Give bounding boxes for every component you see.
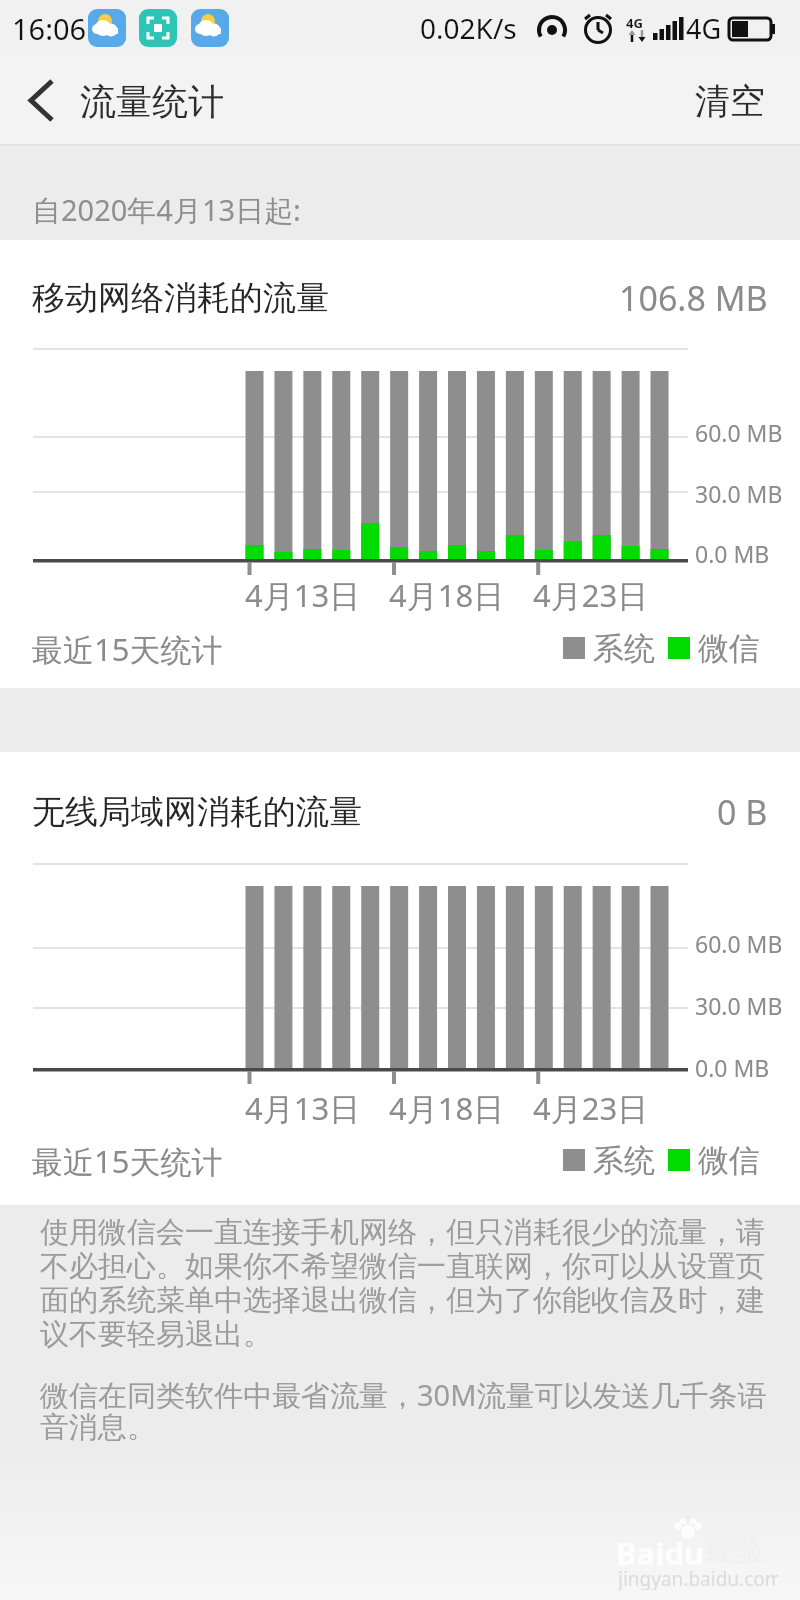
staticText: 微信 bbox=[698, 1141, 760, 1180]
staticText: 系统 bbox=[593, 1141, 655, 1180]
staticText: 4月23日 bbox=[533, 574, 649, 612]
staticText: 60.0 MB bbox=[695, 417, 783, 443]
button[interactable] bbox=[0, 0, 80, 145]
staticText: 4月23日 bbox=[533, 1087, 649, 1125]
staticText: 流量统计 bbox=[80, 79, 224, 124]
staticText: 使用微信会一直连接手机网络，但只消耗很少的流量，请 bbox=[40, 1214, 765, 1248]
staticText: 无线局域网消耗的流量 bbox=[32, 791, 362, 833]
staticText: 4月18日 bbox=[389, 1087, 505, 1125]
staticText: 微信在同类软件中最省流量，30M流量可以发送几千条语 bbox=[40, 1375, 767, 1409]
staticText: Baidu bbox=[616, 1532, 705, 1568]
staticText: 106.8 MB bbox=[619, 275, 768, 321]
staticText: 16:06 bbox=[12, 9, 87, 48]
staticText: 0.0 MB bbox=[695, 538, 770, 564]
staticText: jingyan.baidu.com bbox=[618, 1566, 778, 1590]
staticText: 最近15天统计 bbox=[32, 1140, 223, 1180]
staticText: 4月13日 bbox=[245, 1087, 361, 1125]
staticText: 0.02K/s bbox=[420, 9, 517, 47]
staticText: 0.0 MB bbox=[695, 1052, 770, 1078]
staticText: 30.0 MB bbox=[695, 990, 783, 1016]
staticText: 最近15天统计 bbox=[32, 628, 223, 668]
staticText: 4月13日 bbox=[245, 574, 361, 612]
staticText: 4月18日 bbox=[389, 574, 505, 612]
staticText: 清空 bbox=[695, 79, 765, 123]
staticText: 系统 bbox=[593, 629, 655, 668]
staticText: 自2020年4月13日起: bbox=[32, 190, 301, 230]
staticText: 4G bbox=[686, 10, 722, 47]
staticText: 音消息。 bbox=[40, 1409, 156, 1443]
staticText: 0 B bbox=[717, 789, 768, 835]
staticText: 不必担心。如果你不希望微信一直联网，你可以从设置页 bbox=[40, 1248, 765, 1282]
button[interactable]: 清空 bbox=[690, 78, 770, 124]
staticText: 60.0 MB bbox=[695, 928, 783, 954]
staticText: 议不要轻易退出。 bbox=[40, 1316, 272, 1350]
staticText: 4G bbox=[626, 14, 643, 28]
staticText: 微信 bbox=[698, 629, 760, 668]
staticText: 面的系统菜单中选择退出微信，但为了你能收信及时，建 bbox=[40, 1282, 765, 1316]
staticText: 移动网络消耗的流量 bbox=[32, 277, 329, 319]
staticText: 30.0 MB bbox=[695, 478, 783, 504]
